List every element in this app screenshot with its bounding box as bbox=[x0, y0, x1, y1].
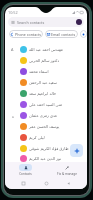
button[interactable]: Open navigation menu bbox=[8, 17, 84, 27]
staticText: دكتور سالم الحربي bbox=[29, 58, 60, 63]
button[interactable]: منى السيد احمد علي bbox=[5, 99, 87, 110]
button[interactable]: نور الدين عبد الكريم bbox=[5, 154, 87, 162]
staticText: سعيد عبد الرحمن bbox=[29, 80, 57, 85]
button[interactable]: ليلى كريم bbox=[5, 132, 87, 143]
staticText: ليلى كريم bbox=[29, 135, 45, 140]
staticText: Email contacts bbox=[51, 32, 76, 37]
staticText: مهندس احمد عبد الله bbox=[29, 47, 63, 52]
staticText: ه bbox=[12, 114, 14, 118]
staticText: يوسف الحسن عمر bbox=[29, 124, 60, 129]
button[interactable]: Create contact bbox=[70, 144, 83, 157]
button[interactable]: يوسف الحسن عمر bbox=[5, 121, 87, 132]
button[interactable]: Back bbox=[64, 179, 73, 188]
button[interactable]: Phone contacts bbox=[9, 30, 43, 38]
button[interactable]: Home bbox=[42, 179, 51, 188]
button[interactable]: ه bbox=[5, 110, 87, 121]
button[interactable]: Email contacts bbox=[45, 30, 78, 38]
button[interactable]: Fix & manage bbox=[46, 162, 87, 178]
staticText: Fix & manage bbox=[57, 172, 77, 176]
staticText: 10:52 bbox=[8, 10, 18, 15]
button[interactable]: سعيد عبد الرحمن bbox=[5, 77, 87, 88]
staticText: اسماء محمد bbox=[29, 69, 49, 74]
button[interactable]: خالد ابراهيم سعد bbox=[5, 88, 87, 99]
staticText: منى السيد احمد علي bbox=[29, 102, 63, 107]
other: Open navigation menu bbox=[11, 20, 15, 24]
button[interactable]: Account bbox=[76, 19, 82, 25]
button[interactable]: دكتور سالم الحربي bbox=[5, 55, 87, 66]
button[interactable]: Contacts bbox=[5, 162, 46, 178]
staticText: Contacts bbox=[19, 172, 32, 176]
staticText: طارق فؤاد الكريم شوقي bbox=[29, 146, 69, 151]
button[interactable]: More filters bbox=[80, 30, 87, 38]
staticText: Search contacts bbox=[17, 20, 45, 25]
staticText: هدى رمزي عثمان bbox=[29, 113, 58, 118]
button[interactable]: اسماء محمد bbox=[5, 66, 87, 77]
button[interactable]: Recents bbox=[19, 179, 28, 188]
staticText: نور الدين عبد الكريم bbox=[29, 156, 62, 161]
button[interactable]: A bbox=[5, 44, 87, 55]
staticText: خالد ابراهيم سعد bbox=[29, 91, 57, 96]
button[interactable]: طارق فؤاد الكريم شوقي bbox=[5, 143, 87, 154]
staticText: Phone contacts bbox=[15, 32, 41, 37]
staticText: A bbox=[11, 47, 14, 52]
